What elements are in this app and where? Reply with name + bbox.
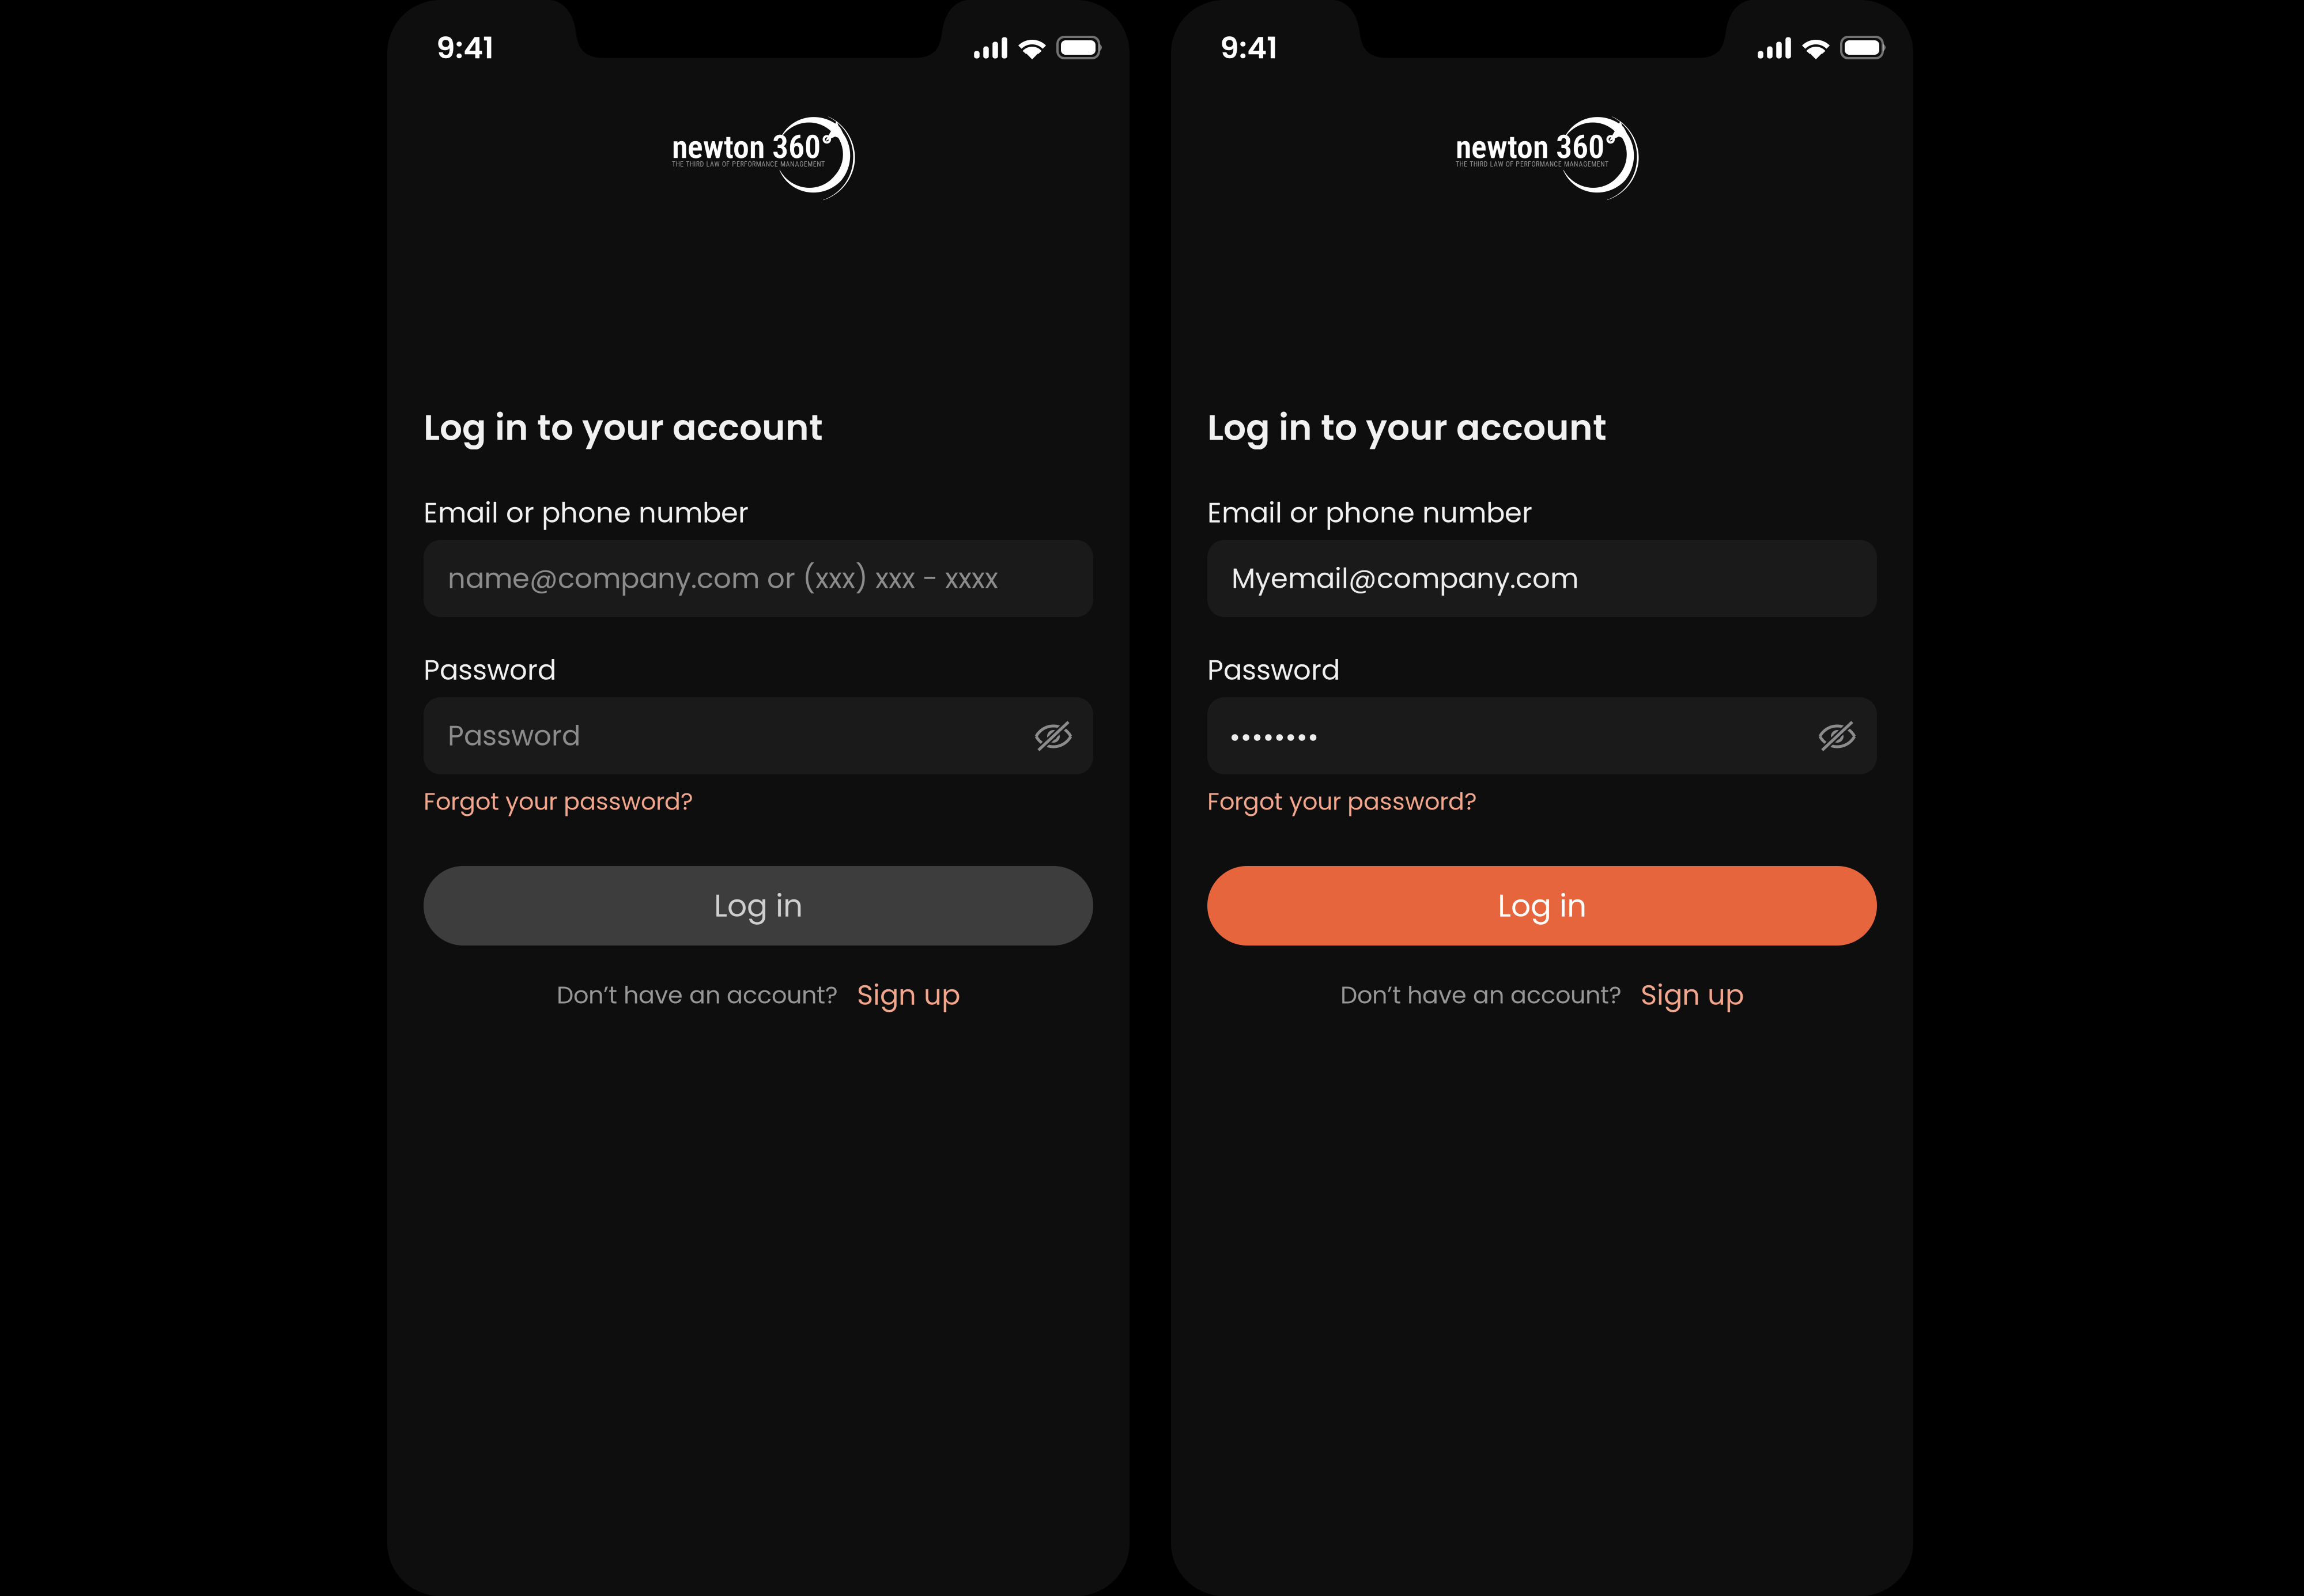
button[interactable]: Log in <box>1207 866 1877 946</box>
button[interactable]: Forgot your password? <box>424 786 1093 816</box>
staticText: Don’t have an account? <box>1340 978 1622 1012</box>
button[interactable]: Show password <box>1022 697 1085 774</box>
staticText: THE THIRD LAW OF PERFORMANCE MANAGEMENT <box>1456 160 1608 168</box>
button[interactable]: Forgot your password? <box>1207 786 1877 816</box>
staticText: name@company.com or (xxx) xxx - xxxx <box>448 559 998 598</box>
staticText: 9:41 <box>436 27 494 69</box>
staticText: Log in to your account <box>1207 403 1607 452</box>
staticText: Forgot your password? <box>424 785 693 818</box>
staticText: THE THIRD LAW OF PERFORMANCE MANAGEMENT <box>672 160 825 168</box>
staticText: 9:41 <box>1220 27 1278 69</box>
button[interactable]: Log in <box>424 866 1093 946</box>
button[interactable]: Sign up <box>1641 976 1744 1014</box>
staticText: Password <box>1207 651 1340 689</box>
staticText: Password <box>448 716 580 755</box>
staticText: Sign up <box>1641 976 1744 1014</box>
staticText: Myemail@company.com <box>1232 559 1578 598</box>
staticText: Forgot your password? <box>1207 785 1477 818</box>
staticText: newton 360° <box>672 128 833 166</box>
button[interactable]: Show password <box>1806 697 1869 774</box>
staticText: Don’t have an account? <box>557 978 838 1012</box>
staticText: newton 360° <box>1456 128 1617 166</box>
staticText: Log in <box>714 884 803 927</box>
staticText: Email or phone number <box>1207 493 1532 532</box>
staticText: Log in to your account <box>424 403 823 452</box>
staticText: Sign up <box>857 976 960 1014</box>
staticText: Password <box>424 651 556 689</box>
button[interactable]: Sign up <box>857 976 960 1014</box>
staticText: Log in <box>1498 884 1587 927</box>
staticText: Email or phone number <box>424 493 749 532</box>
